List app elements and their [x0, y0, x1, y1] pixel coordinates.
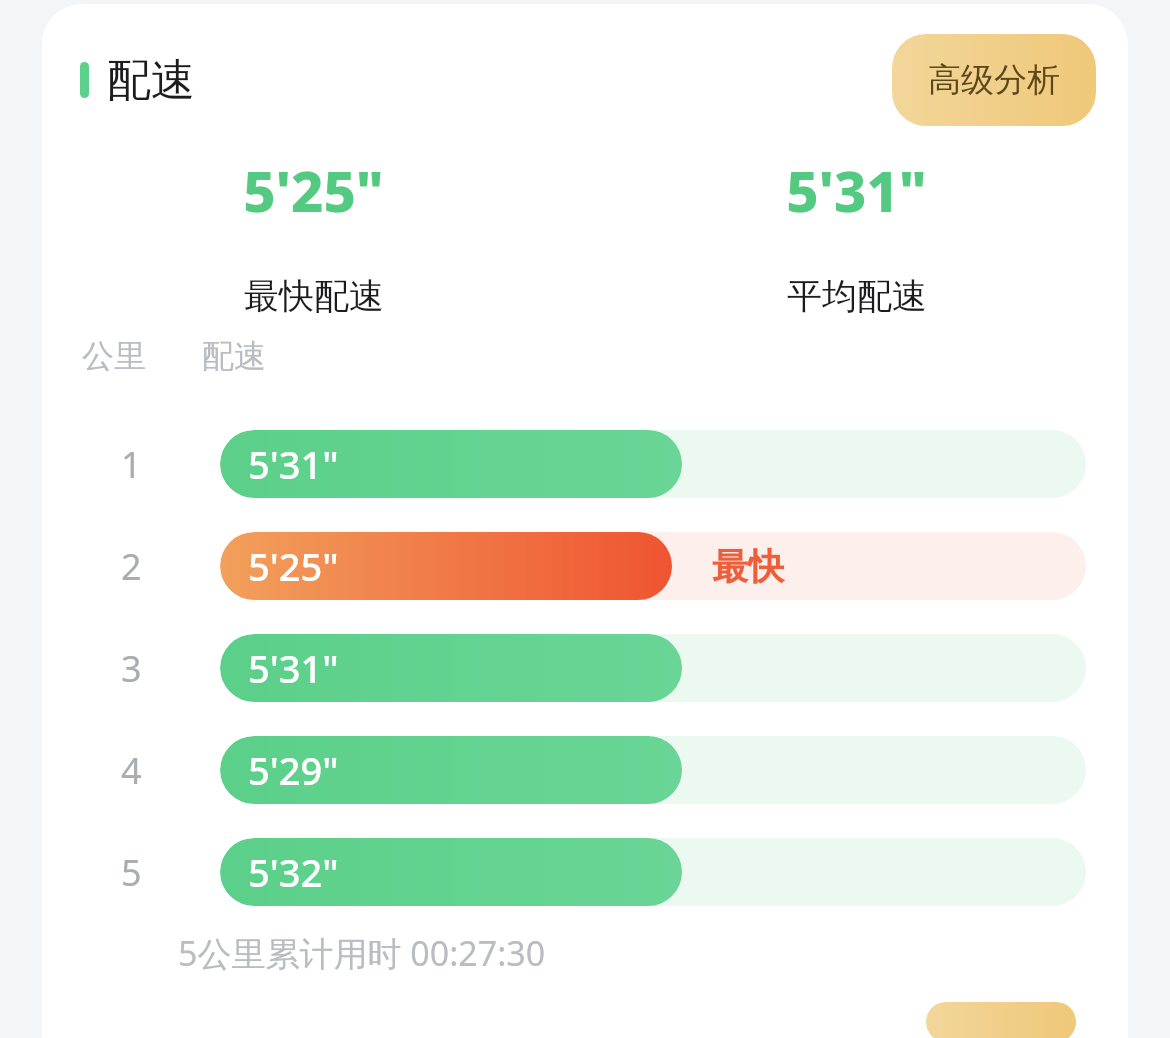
button[interactable]: 更多 [926, 1002, 1076, 1038]
staticText: 配速 [107, 53, 195, 108]
staticText: 公里 [82, 336, 202, 376]
staticText: 5'31" [248, 438, 339, 490]
button[interactable]: 2 [42, 532, 1128, 600]
staticText: 5'31" [248, 642, 339, 694]
staticText: 4 [121, 746, 142, 795]
staticText: 5 [121, 848, 142, 897]
staticText: 5'25" [248, 540, 339, 592]
staticText: 5'32" [248, 846, 339, 898]
staticText: 5'29" [248, 744, 339, 796]
button[interactable]: 1 [42, 430, 1128, 498]
button[interactable]: 3 [42, 634, 1128, 702]
staticText: 2 [121, 542, 142, 591]
staticText: 1 [121, 440, 142, 489]
staticText: 5'25" [243, 152, 384, 228]
staticText: 3 [121, 644, 142, 693]
staticText: 5公里累计用时 00:27:30 [178, 930, 546, 976]
button[interactable]: 5 [42, 838, 1128, 906]
button[interactable]: 高级分析 [892, 34, 1096, 126]
staticText: 配速 [202, 336, 266, 376]
staticText: 5'31" [786, 152, 927, 228]
button[interactable]: 4 [42, 736, 1128, 804]
staticText: 高级分析 [928, 59, 1060, 101]
staticText: 最快配速 [244, 274, 384, 318]
staticText: 最快 [712, 544, 784, 589]
staticText: 平均配速 [787, 274, 927, 318]
